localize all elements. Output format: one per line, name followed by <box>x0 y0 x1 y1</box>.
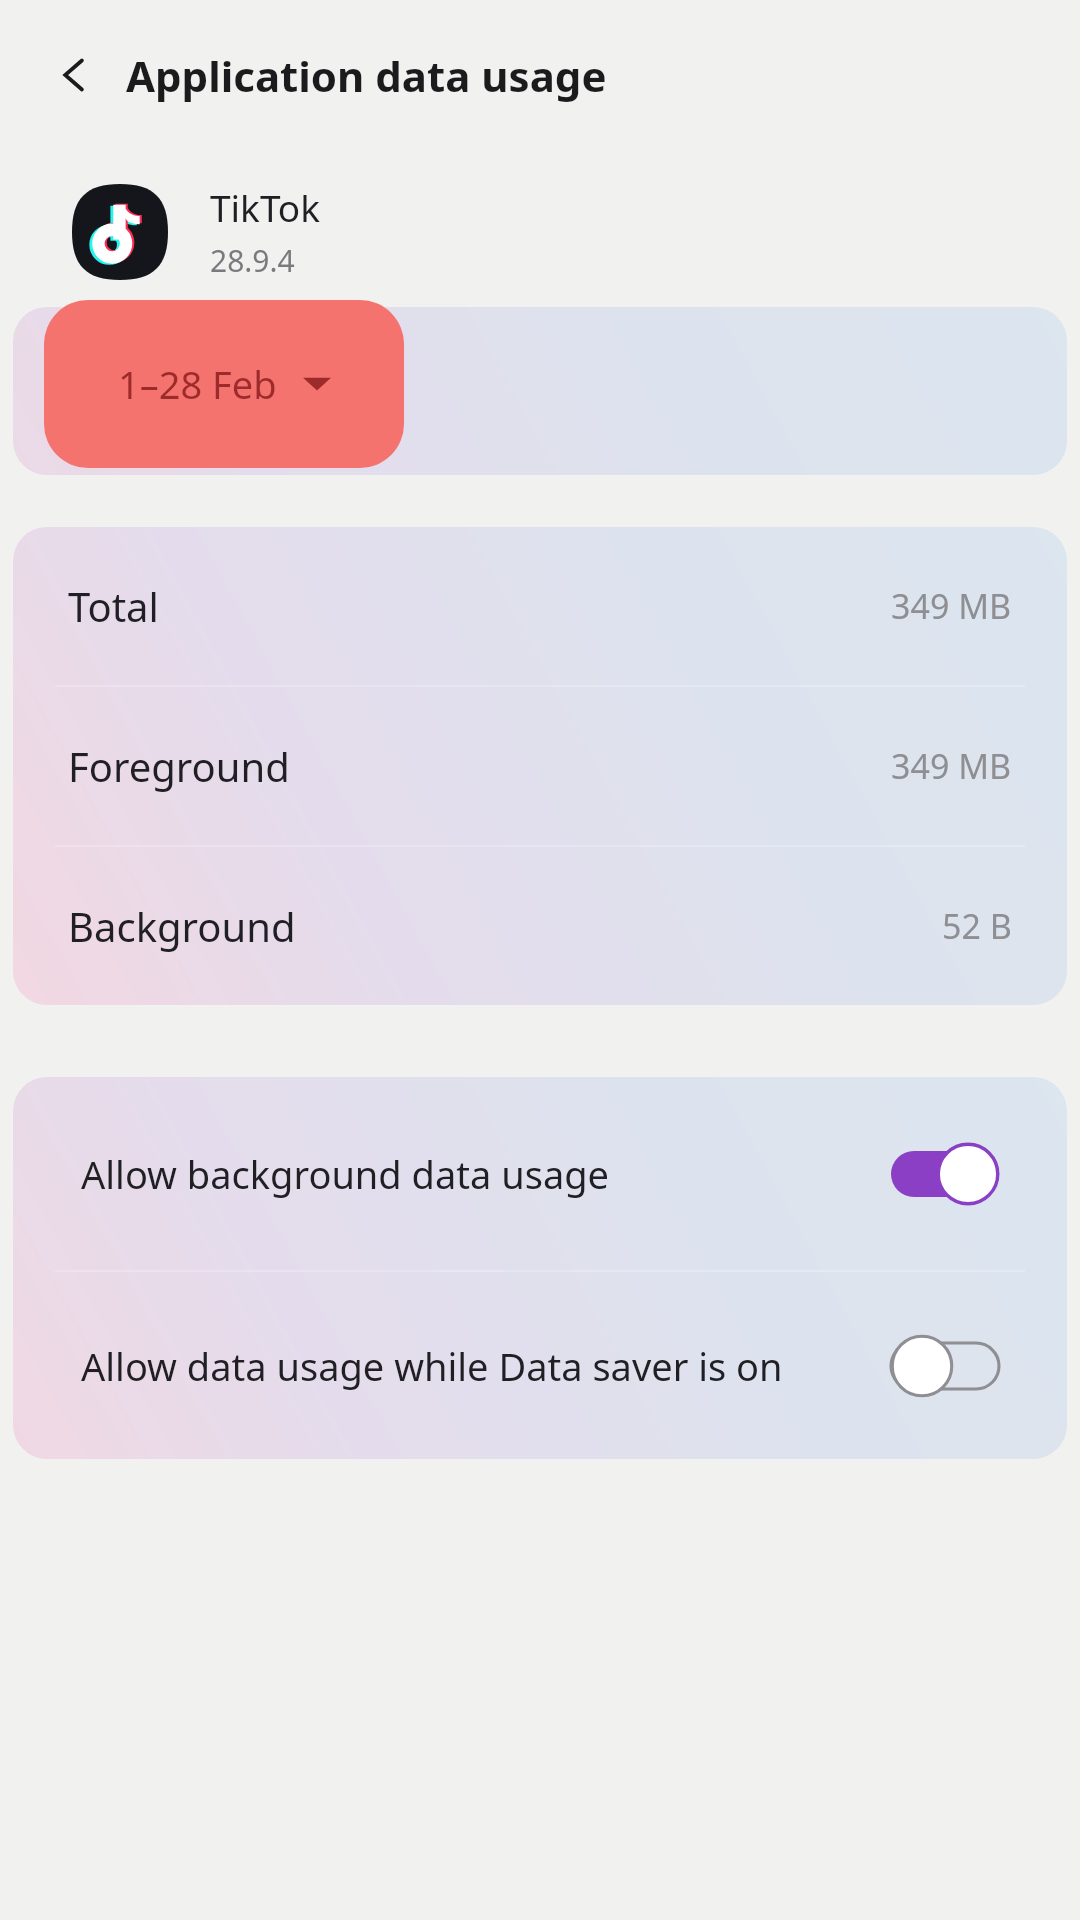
staticText: Application data usage <box>126 47 607 104</box>
staticText: Allow background data usage <box>81 1148 871 1200</box>
staticText: 1–28 Feb <box>118 358 277 410</box>
staticText: 52 B <box>942 903 1012 949</box>
staticText: TikTok <box>210 182 321 232</box>
button[interactable]: Background <box>13 847 1067 1005</box>
staticText: 349 MB <box>891 743 1012 789</box>
button[interactable]: 1–28 Feb <box>44 300 404 468</box>
staticText: Allow data usage while Data saver is on <box>81 1340 871 1392</box>
staticText: Total <box>68 579 159 633</box>
button[interactable]: Allow background data usage <box>13 1077 1067 1270</box>
button[interactable]: Back <box>46 47 102 103</box>
staticText: 349 MB <box>891 583 1012 629</box>
staticText: Background <box>68 899 296 953</box>
button[interactable]: Total <box>13 527 1067 685</box>
button[interactable]: Allow data usage while Data saver is on <box>13 1272 1067 1459</box>
staticText: Foreground <box>68 739 290 793</box>
button[interactable]: Foreground <box>13 687 1067 845</box>
staticText: 28.9.4 <box>210 240 295 281</box>
